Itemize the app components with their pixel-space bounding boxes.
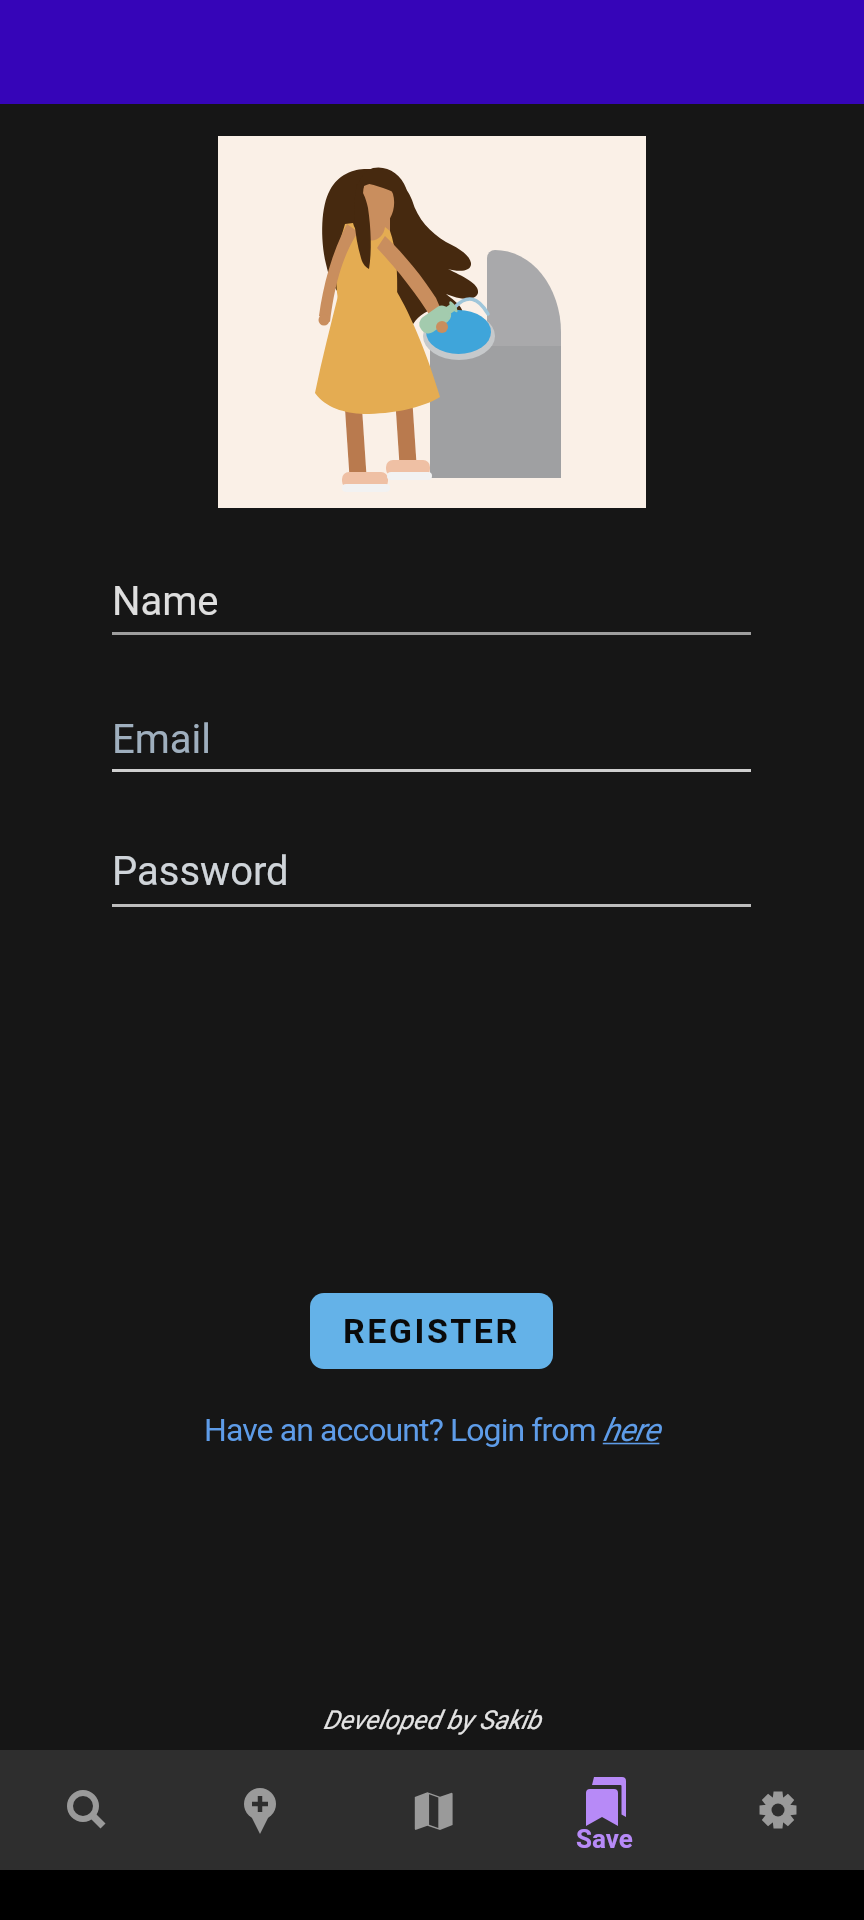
button[interactable]: Save: [518, 1750, 691, 1870]
staticText: Password: [112, 848, 289, 895]
staticText: Have an account? Login from here: [204, 1411, 660, 1449]
button[interactable]: [0, 1750, 173, 1870]
button[interactable]: Have an account? Login from here: [0, 1411, 864, 1449]
staticText: Name: [112, 578, 219, 625]
button[interactable]: [691, 1750, 864, 1870]
button[interactable]: [346, 1750, 519, 1870]
button[interactable]: REGISTER: [310, 1293, 553, 1369]
staticText: Save: [576, 1824, 633, 1854]
staticText: Email: [112, 716, 212, 763]
staticText: REGISTER: [343, 1311, 520, 1351]
staticText: Developed by Sakib: [323, 1705, 541, 1735]
button[interactable]: [173, 1750, 346, 1870]
